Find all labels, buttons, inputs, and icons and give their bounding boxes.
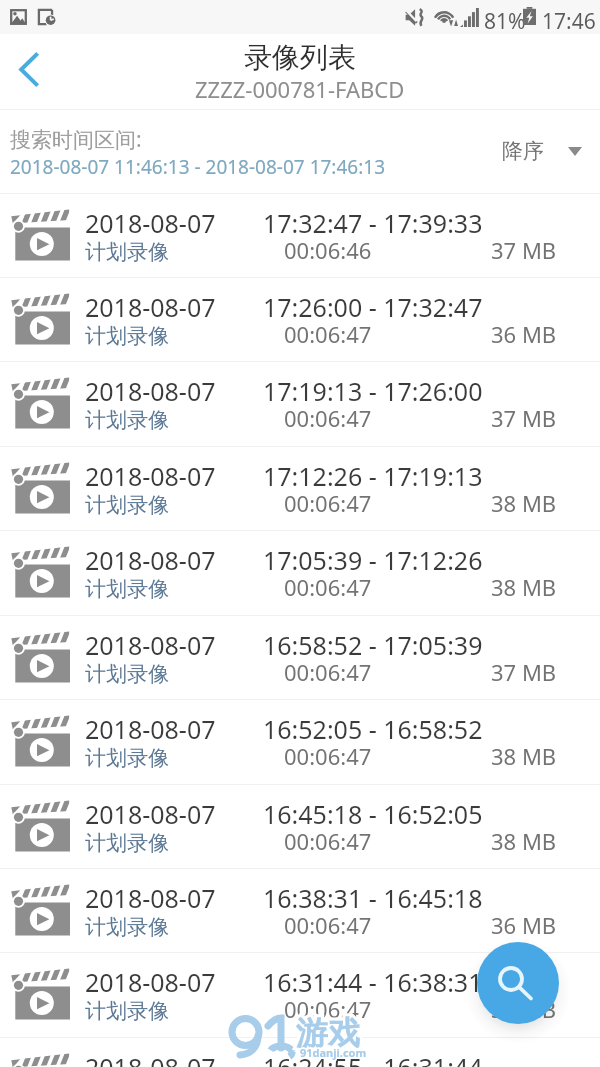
- staticText: 搜索时间区间:: [10, 125, 142, 154]
- button[interactable]: 2018-08-07: [0, 953, 600, 1037]
- staticText: 00:06:47: [284, 826, 372, 856]
- staticText: 81%: [484, 7, 526, 36]
- button[interactable]: Search: [477, 942, 559, 1024]
- staticText: 38 MB: [491, 741, 557, 771]
- staticText: 录像列表: [244, 40, 356, 75]
- staticText: 计划录像: [85, 323, 169, 349]
- staticText: 2018-08-07: [85, 797, 216, 831]
- staticText: 2018-08-07: [85, 543, 216, 577]
- staticText: 00:06:47: [284, 994, 372, 1024]
- staticText: 游戏: [296, 1013, 360, 1053]
- staticText: 计划录像: [85, 998, 169, 1024]
- staticText: 37 MB: [491, 403, 557, 433]
- staticText: 2018-08-07 11:46:13 - 2018-08-07 17:46:1…: [10, 154, 386, 180]
- staticText: 2018-08-07: [85, 459, 216, 493]
- staticText: 17:26:00 - 17:32:47: [263, 290, 483, 324]
- button[interactable]: 降序: [502, 138, 582, 164]
- staticText: 00:06:47: [284, 488, 372, 518]
- button[interactable]: 2018-08-07: [0, 278, 600, 362]
- staticText: 2018-08-07: [85, 290, 216, 324]
- staticText: 16:31:44 - 16:38:31: [263, 965, 483, 999]
- staticText: 00:06:47: [284, 319, 372, 349]
- staticText: 16:58:52 - 17:05:39: [263, 628, 483, 662]
- button[interactable]: 2018-08-07: [0, 1038, 600, 1067]
- staticText: 00:06:46: [284, 235, 372, 265]
- button[interactable]: 2018-08-07: [0, 700, 600, 784]
- staticText: 00:06:47: [284, 572, 372, 602]
- staticText: 2018-08-07: [85, 1050, 216, 1067]
- staticText: 17:12:26 - 17:19:13: [263, 459, 483, 493]
- button[interactable]: 2018-08-07: [0, 447, 600, 531]
- button[interactable]: 2018-08-07: [0, 362, 600, 446]
- staticText: ZZZZ-000781-FABCD: [195, 74, 405, 104]
- staticText: 17:32:47 - 17:39:33: [263, 206, 483, 240]
- staticText: 38 MB: [491, 572, 557, 602]
- staticText: 16:24:55 - 16:31:44: [263, 1050, 483, 1067]
- button[interactable]: Back: [0, 34, 57, 109]
- button[interactable]: 2018-08-07: [0, 869, 600, 953]
- staticText: 00:06:47: [284, 741, 372, 771]
- button[interactable]: 2018-08-07: [0, 616, 600, 700]
- staticText: 2018-08-07: [85, 712, 216, 746]
- staticText: 38 MB: [491, 488, 557, 518]
- staticText: 计划录像: [85, 239, 169, 265]
- staticText: 37 MB: [491, 657, 557, 687]
- staticText: 00:06:47: [284, 403, 372, 433]
- staticText: 16:45:18 - 16:52:05: [263, 797, 483, 831]
- staticText: 计划录像: [85, 576, 169, 602]
- button[interactable]: 2018-08-07: [0, 531, 600, 615]
- staticText: 36 MB: [491, 319, 557, 349]
- staticText: 36 MB: [491, 910, 557, 940]
- staticText: 2018-08-07: [85, 965, 216, 999]
- staticText: 2018-08-07: [85, 374, 216, 408]
- staticText: 2018-08-07: [85, 206, 216, 240]
- staticText: 2018-08-07: [85, 881, 216, 915]
- staticText: 计划录像: [85, 830, 169, 856]
- staticText: 16:38:31 - 16:45:18: [263, 881, 483, 915]
- staticText: 17:05:39 - 17:12:26: [263, 543, 483, 577]
- staticText: 游戏: [296, 1013, 360, 1053]
- staticText: 00:06:47: [284, 657, 372, 687]
- staticText: 37 MB: [491, 235, 557, 265]
- staticText: 16:52:05 - 16:58:52: [263, 712, 483, 746]
- staticText: 17:19:13 - 17:26:00: [263, 374, 483, 408]
- button[interactable]: 2018-08-07: [0, 785, 600, 869]
- staticText: 计划录像: [85, 407, 169, 433]
- staticText: 降序: [502, 138, 544, 164]
- staticText: 36 MB: [491, 994, 557, 1024]
- staticText: 00:06:47: [284, 910, 372, 940]
- button[interactable]: 2018-08-07: [0, 194, 600, 278]
- staticText: 计划录像: [85, 745, 169, 771]
- staticText: 计划录像: [85, 914, 169, 940]
- staticText: 计划录像: [85, 661, 169, 687]
- staticText: 2018-08-07: [85, 628, 216, 662]
- staticText: 38 MB: [491, 826, 557, 856]
- staticText: 17:46: [542, 7, 596, 36]
- staticText: 91danji.com: [300, 1045, 367, 1060]
- staticText: 91danji.com: [300, 1045, 367, 1060]
- staticText: 计划录像: [85, 492, 169, 518]
